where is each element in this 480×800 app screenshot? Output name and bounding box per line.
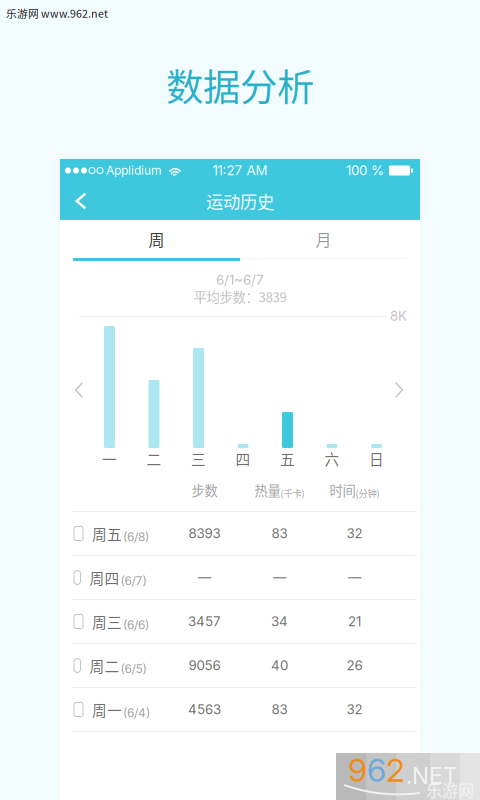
staticText: 8393	[188, 525, 220, 541]
staticText: 周一	[92, 699, 122, 720]
button[interactable]: 周	[73, 220, 240, 261]
button[interactable]: 月	[240, 220, 407, 261]
staticText: 热量	[254, 480, 280, 500]
staticText: 周四	[89, 567, 119, 588]
button[interactable]: 周五	[60, 512, 420, 555]
staticText: 83	[271, 525, 287, 541]
staticText: 6	[367, 751, 386, 789]
staticText: (千卡)	[280, 486, 304, 500]
button[interactable]: 周三	[60, 600, 420, 643]
staticText: (6/5)	[120, 662, 146, 676]
staticText: 9056	[188, 657, 220, 673]
staticText: 运动历史	[206, 188, 274, 214]
staticText: 4563	[188, 701, 221, 717]
button[interactable]: 周四	[60, 556, 420, 599]
staticText: 34	[271, 613, 288, 629]
staticText: (6/6)	[123, 618, 149, 632]
staticText: 平均步数：3839	[193, 287, 286, 306]
staticText: —	[198, 569, 211, 585]
staticText: 一	[102, 448, 117, 469]
staticText: 21	[348, 613, 361, 629]
staticText: 周二	[89, 655, 119, 676]
button[interactable]: Previous week	[65, 368, 93, 412]
staticText: —	[273, 569, 286, 585]
staticText: 四	[235, 448, 250, 469]
staticText: 乐游网 www.962.net	[6, 5, 108, 21]
staticText: 6/1~6/7	[216, 272, 264, 288]
staticText: 步数	[191, 480, 217, 500]
staticText: —	[348, 569, 361, 585]
staticText: (6/8)	[123, 530, 149, 544]
staticText: 32	[346, 525, 362, 541]
button[interactable]: Next week	[385, 368, 413, 412]
staticText: 周	[148, 227, 164, 251]
staticText: 11:27 AM	[212, 162, 267, 178]
staticText: 40	[271, 657, 288, 673]
staticText: 时间	[329, 480, 355, 500]
staticText: 100 %	[346, 162, 384, 178]
staticText: .NET	[406, 762, 457, 789]
staticText: 9	[348, 751, 367, 789]
button[interactable]: 周二	[60, 644, 420, 687]
staticText: 83	[271, 701, 287, 717]
staticText: 3457	[188, 613, 221, 629]
staticText: 8K	[390, 308, 407, 324]
staticText: 32	[346, 701, 362, 717]
button[interactable]: 周一	[60, 688, 420, 731]
staticText: 六	[324, 448, 339, 469]
staticText: 2	[386, 751, 405, 789]
staticText: (6/4)	[123, 706, 150, 720]
staticText: 周三	[92, 611, 122, 632]
staticText: Applidium	[106, 163, 162, 178]
staticText: 月	[315, 227, 331, 251]
staticText: 五	[280, 448, 295, 469]
staticText: 乐游网	[426, 778, 474, 800]
staticText: 数据分析	[166, 58, 314, 112]
staticText: (6/7)	[120, 574, 146, 588]
staticText: 日	[369, 448, 384, 469]
staticText: 二	[146, 448, 161, 469]
button[interactable]: Back	[60, 182, 102, 220]
staticText: (分钟)	[355, 486, 379, 500]
staticText: 周五	[92, 523, 122, 544]
staticText: 三	[191, 448, 206, 469]
staticText: 26	[346, 657, 362, 673]
